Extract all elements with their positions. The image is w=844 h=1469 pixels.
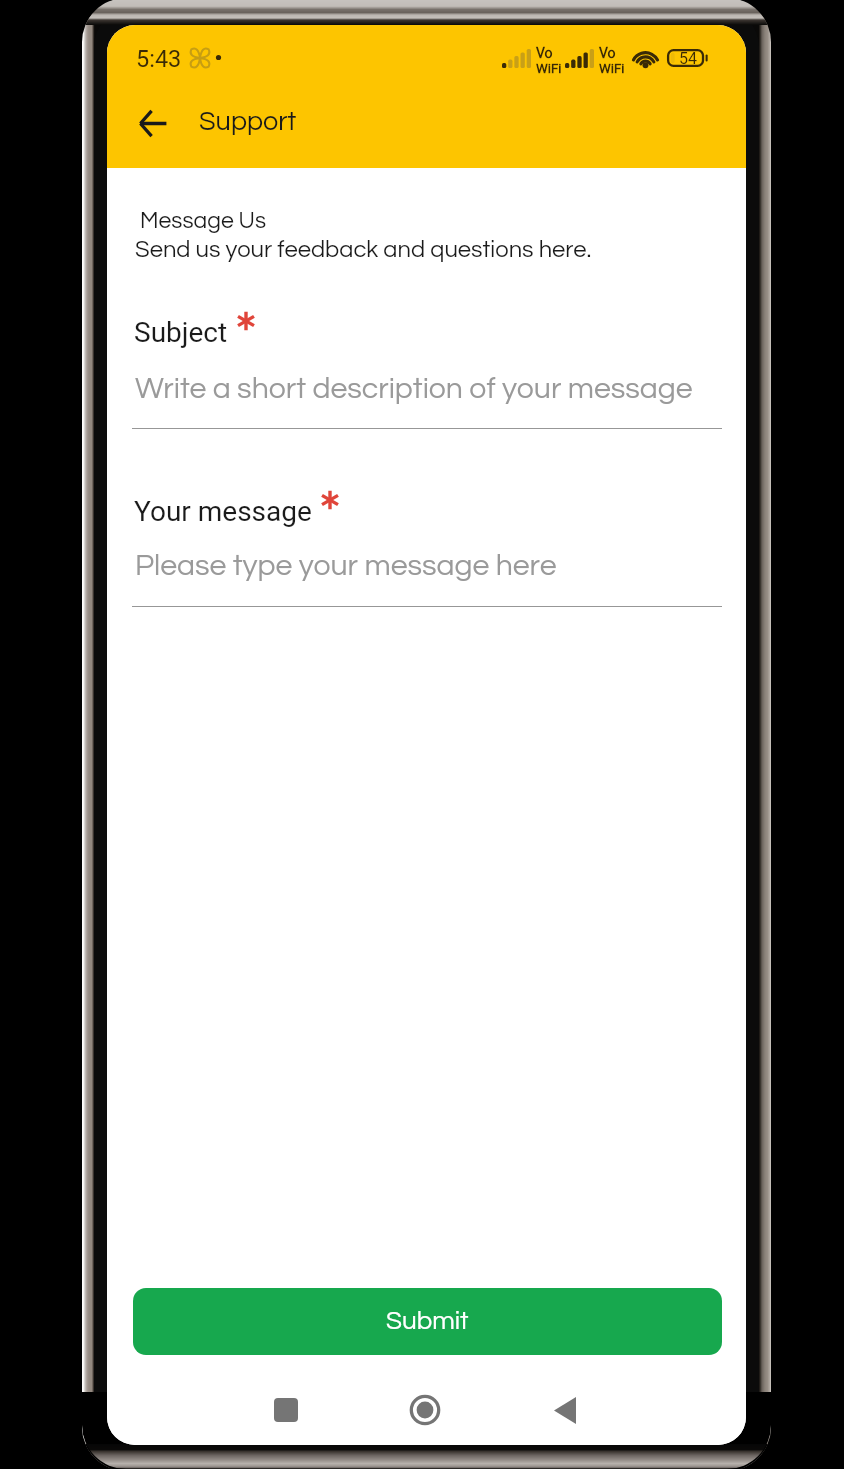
staticText: Please type your message here	[135, 550, 557, 581]
staticText: Support	[199, 108, 297, 136]
staticText: Subject	[134, 316, 228, 349]
staticText: Vo	[536, 45, 553, 61]
staticText: Submit	[386, 1308, 469, 1335]
staticText: Write a short description of your messag…	[135, 373, 693, 404]
staticText: Message Us	[140, 209, 266, 233]
staticText: WiFi	[599, 61, 625, 76]
staticText: Vo	[599, 45, 616, 61]
button[interactable]: Back	[130, 100, 176, 146]
button[interactable]: Recent apps	[260, 1384, 312, 1436]
button[interactable]: Back	[539, 1384, 591, 1436]
staticText: Your message	[134, 495, 312, 528]
staticText: Send us your feedback and questions here…	[135, 237, 592, 262]
button[interactable]: Submit	[133, 1288, 722, 1355]
staticText: 5:43	[136, 45, 182, 73]
staticText: WiFi	[536, 61, 562, 76]
button[interactable]: Home	[399, 1384, 451, 1436]
staticText: 54	[679, 49, 697, 68]
